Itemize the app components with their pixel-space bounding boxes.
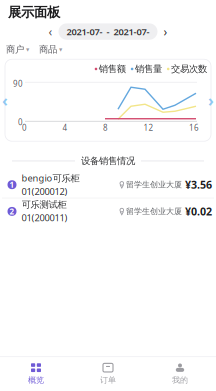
staticText: 商品 (39, 44, 57, 55)
button[interactable]: 2021-07- - 2021-07- (58, 23, 157, 40)
staticText: ▾ (59, 46, 62, 53)
staticText: 留学生创业大厦 (126, 206, 182, 216)
staticText: 2 (9, 206, 14, 217)
button[interactable]: 2 (0, 198, 216, 224)
staticText: › (208, 90, 214, 111)
staticText: 0 (22, 122, 27, 133)
staticText: 01(200011) (21, 211, 67, 224)
staticText: 订单 (100, 375, 116, 385)
staticText: 1 (9, 179, 14, 190)
staticText: 0 (18, 117, 23, 127)
staticText: 商户 (6, 44, 24, 55)
button[interactable]: 我的 (144, 357, 216, 391)
staticText: 2021-07- - 2021-07- (66, 25, 149, 38)
staticText: 12 (143, 122, 153, 133)
staticText: 16 (189, 122, 199, 133)
staticText: 展示面板 (8, 4, 60, 20)
staticText: 01(200012) (21, 185, 67, 198)
button[interactable]: 下一个图表 (206, 94, 216, 107)
staticText: 90 (13, 78, 23, 89)
button[interactable]: 订单 (72, 357, 144, 391)
staticText: › (163, 24, 167, 39)
staticText: 4 (62, 122, 67, 133)
staticText: 可乐测试柜 (21, 199, 66, 210)
staticText: 概览 (28, 375, 44, 385)
staticText: 留学生创业大厦 (126, 180, 182, 190)
staticText: 8 (103, 122, 108, 133)
button[interactable]: 商品 (39, 44, 62, 55)
staticText: 交易次数 (171, 63, 207, 75)
staticText: 设备销售情况 (81, 155, 135, 167)
button[interactable]: 1 (0, 172, 216, 198)
button[interactable]: 商户 (6, 44, 39, 55)
button[interactable]: 下一周期 (161, 27, 169, 37)
staticText: 销售额 (99, 63, 126, 75)
staticText: ‹ (2, 90, 8, 111)
button[interactable]: 上一周期 (46, 27, 54, 37)
staticText: 销售量 (135, 63, 162, 75)
staticText: ¥0.02 (185, 204, 212, 218)
staticText: 我的 (172, 375, 188, 385)
staticText: ¥3.56 (185, 178, 212, 192)
button[interactable]: 概览 (0, 357, 72, 391)
staticText: ▾ (26, 46, 29, 53)
staticText: bengio可乐柜 (21, 172, 79, 184)
button[interactable]: 上一个图表 (0, 94, 10, 107)
staticText: ‹ (48, 24, 52, 39)
